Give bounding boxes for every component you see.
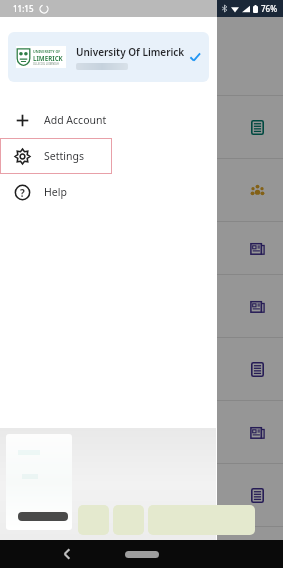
staticText: OLLSCOIL LUIMNIGH bbox=[33, 62, 59, 66]
staticText: 11:15 bbox=[13, 3, 34, 14]
staticText: LIMERICK bbox=[33, 54, 63, 62]
staticText: 76% bbox=[261, 3, 277, 14]
staticText: Notifications bbox=[14, 68, 80, 83]
staticText: UNIVERSITY OF bbox=[33, 49, 61, 54]
button[interactable]: UNIVERSITY OF bbox=[8, 32, 209, 82]
staticText: ? bbox=[20, 186, 25, 200]
staticText: Items have bbox=[14, 183, 72, 198]
button[interactable]: Share bbox=[78, 505, 109, 535]
button[interactable]: Back bbox=[56, 543, 78, 565]
staticText: Settings bbox=[44, 149, 84, 163]
staticText: Sandbox bbox=[14, 120, 59, 135]
button[interactable]: Home bbox=[125, 551, 159, 558]
staticText: Add Account bbox=[44, 113, 107, 127]
button[interactable]: Add Account bbox=[0, 102, 217, 138]
staticText: Help bbox=[44, 185, 67, 199]
button[interactable]: Capture more bbox=[148, 505, 255, 535]
button[interactable]: Edit bbox=[113, 505, 144, 535]
button[interactable]: Settings bbox=[0, 138, 112, 174]
staticText: University Of Limerick bbox=[76, 45, 185, 59]
button[interactable]: ? bbox=[0, 174, 217, 210]
